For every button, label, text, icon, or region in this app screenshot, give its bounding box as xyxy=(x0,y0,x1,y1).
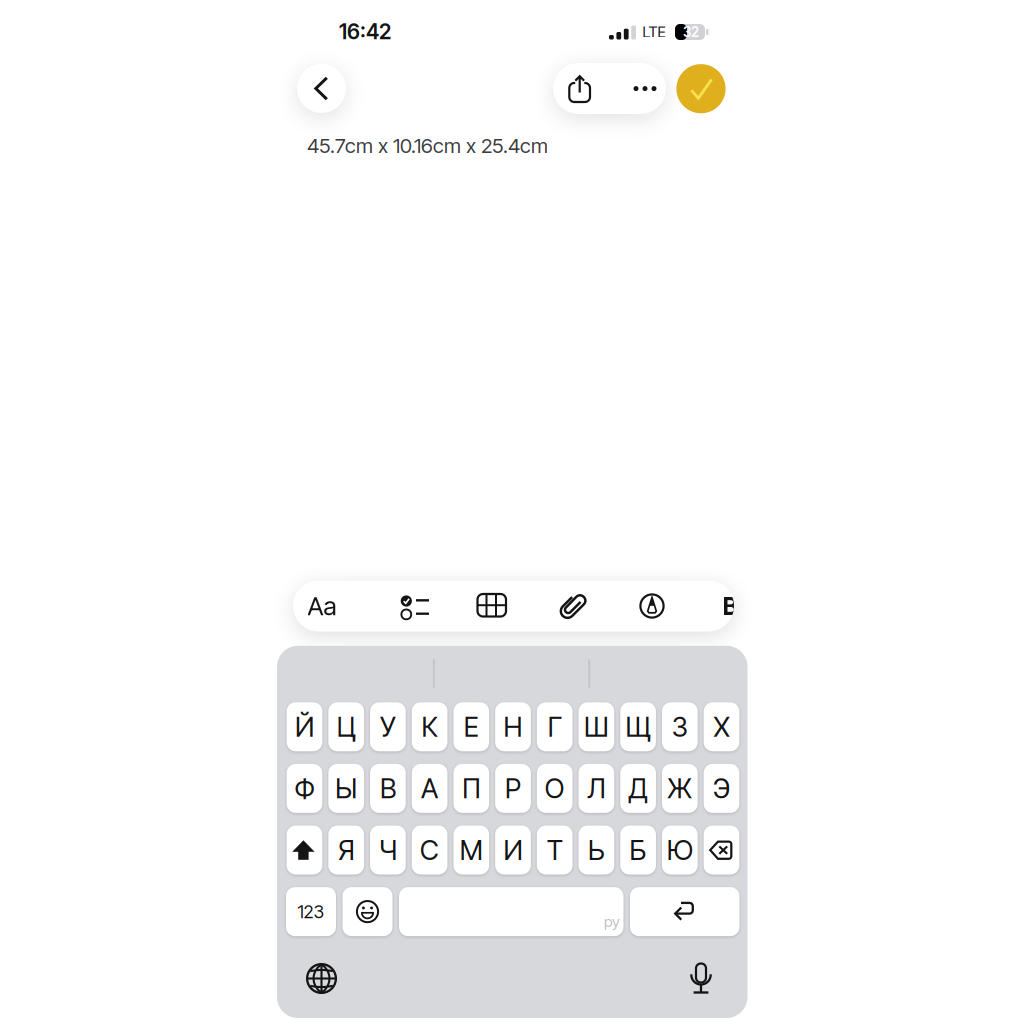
staticText: Д xyxy=(629,772,648,805)
button[interactable]: Ф xyxy=(287,764,322,813)
button[interactable]: И xyxy=(495,825,531,874)
staticText: У xyxy=(380,710,396,743)
button[interactable]: Ь xyxy=(579,825,614,874)
staticText: Е xyxy=(464,710,479,743)
staticText: LTE xyxy=(642,23,665,41)
button[interactable]: Э xyxy=(704,764,739,813)
button[interactable]: Draw xyxy=(619,580,685,631)
staticText: А xyxy=(421,772,438,805)
staticText: Ю xyxy=(667,833,693,867)
button[interactable]: П xyxy=(453,764,489,813)
button[interactable]: Delete xyxy=(704,825,739,874)
button[interactable]: Bold xyxy=(710,580,750,631)
button[interactable]: Е xyxy=(453,702,489,751)
button[interactable]: С xyxy=(412,825,447,874)
button[interactable]: М xyxy=(453,825,489,874)
button[interactable]: Н xyxy=(495,702,531,751)
staticText: Ц xyxy=(337,710,356,743)
button[interactable]: Shift xyxy=(287,825,322,874)
button[interactable]: Г xyxy=(537,702,573,751)
staticText: Я xyxy=(338,833,355,867)
staticText: Ж xyxy=(667,772,692,805)
button[interactable]: Я xyxy=(328,825,364,874)
button[interactable]: У xyxy=(370,702,406,751)
staticText: О xyxy=(545,772,565,805)
button[interactable]: Ч xyxy=(370,825,406,874)
button[interactable]: Ы xyxy=(328,764,364,813)
button[interactable]: Ц xyxy=(328,702,364,751)
button[interactable]: Ж xyxy=(662,764,698,813)
button[interactable]: Б xyxy=(620,825,656,874)
staticText: Р xyxy=(505,772,521,805)
button[interactable]: Table xyxy=(459,580,525,631)
button[interactable]: Р xyxy=(495,764,531,813)
button[interactable]: Done xyxy=(676,64,726,113)
button[interactable]: Share xyxy=(553,63,609,114)
staticText: Б xyxy=(630,833,647,867)
staticText: Ш xyxy=(584,710,609,743)
button[interactable]: Щ xyxy=(620,702,656,751)
button[interactable]: Emoji xyxy=(342,887,392,936)
staticText: И xyxy=(503,833,522,867)
button[interactable]: Back xyxy=(297,64,346,113)
button[interactable]: Т xyxy=(537,825,573,874)
staticText: В xyxy=(380,772,396,805)
button[interactable]: К xyxy=(412,702,447,751)
staticText: 123 xyxy=(297,901,324,922)
button[interactable]: Ю xyxy=(662,825,698,874)
staticText: Г xyxy=(548,710,562,743)
button[interactable]: Numbers xyxy=(286,887,336,936)
button[interactable]: В xyxy=(370,764,406,813)
button[interactable]: Next keyboard xyxy=(299,956,343,1000)
button[interactable]: Ш xyxy=(579,702,614,751)
button[interactable]: Д xyxy=(620,764,656,813)
staticText: Э xyxy=(713,772,730,805)
staticText: Й xyxy=(295,710,314,743)
staticText: К xyxy=(422,710,438,743)
staticText: Aa xyxy=(307,591,336,621)
button[interactable]: О xyxy=(537,764,573,813)
staticText: 32 xyxy=(683,24,699,40)
staticText: З xyxy=(672,710,688,743)
button[interactable]: Й xyxy=(287,702,322,751)
staticText: Х xyxy=(713,710,729,743)
staticText: С xyxy=(420,833,439,867)
button[interactable]: А xyxy=(412,764,447,813)
staticText: ру xyxy=(604,912,620,931)
staticText: Ы xyxy=(335,772,357,805)
staticText: Ч xyxy=(379,833,397,867)
button[interactable]: Х xyxy=(704,702,739,751)
staticText: Ф xyxy=(294,772,314,805)
staticText: B xyxy=(722,591,738,621)
staticText: П xyxy=(462,772,480,805)
staticText: 16:42 xyxy=(339,19,391,44)
staticText: Н xyxy=(503,710,522,743)
button[interactable]: More xyxy=(609,63,666,114)
staticText: Л xyxy=(587,772,605,805)
staticText: Ь xyxy=(588,833,605,867)
staticText: Щ xyxy=(626,710,651,743)
staticText: 45.7cm x 10.16cm x 25.4cm xyxy=(307,133,548,158)
button[interactable]: Format xyxy=(289,580,355,631)
staticText: М xyxy=(460,833,483,867)
button[interactable]: Л xyxy=(579,764,614,813)
button[interactable]: Dictation xyxy=(679,956,723,1000)
button[interactable]: Return xyxy=(630,887,739,936)
button[interactable]: Space xyxy=(399,887,623,936)
staticText: Т xyxy=(547,833,563,867)
button[interactable]: Attach xyxy=(540,580,606,631)
button[interactable]: З xyxy=(662,702,698,751)
button[interactable]: Checklist xyxy=(374,580,440,631)
